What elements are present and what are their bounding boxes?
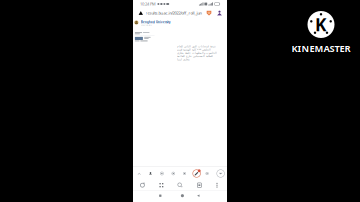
staticText: university • libya	[141, 24, 152, 26]
button[interactable]: Stickers	[157, 169, 166, 178]
staticText: KINEMASTER	[291, 42, 350, 55]
button[interactable]: Voice input	[146, 169, 155, 178]
staticText: 10:24 PM	[140, 1, 156, 7]
button[interactable]: Translate	[180, 169, 189, 178]
button[interactable]: Home	[176, 191, 188, 200]
staticText: بنغازي ليبيا	[176, 58, 189, 61]
staticText: Benghazi University	[141, 20, 171, 24]
button[interactable]: GIF	[169, 169, 178, 178]
staticText: نتيجة امتحانات الدور الثاني للعام	[176, 45, 215, 48]
button[interactable]: Tabs	[193, 180, 205, 191]
button[interactable]: Back	[136, 180, 148, 191]
button[interactable]: Emoji	[203, 169, 212, 178]
button[interactable]: AI writing assistant	[192, 168, 202, 178]
button[interactable]: Search	[174, 180, 186, 191]
staticText: الحاسوب والمعلومات جامعة بنغازي	[176, 51, 216, 54]
button[interactable]: Expand toolbar	[135, 169, 144, 178]
button[interactable]: Back	[192, 191, 204, 200]
button[interactable]: Recent apps	[154, 191, 166, 200]
button[interactable]: results.bu.ac.in/2022/off_roll_jun	[133, 8, 227, 18]
button[interactable]: Fullscreen	[155, 180, 167, 191]
staticText: K	[315, 13, 327, 36]
staticText: results.bu.ac.in/2022/off_roll_jun	[146, 10, 202, 16]
staticText: الجامعي ٢٠٢٢ كلية الهندسة قسم	[176, 48, 210, 51]
button[interactable]: More options	[211, 180, 223, 191]
button[interactable]: Hide keyboard	[216, 168, 226, 178]
staticText: للطلبة المسجلين خارج القائمة	[176, 54, 212, 57]
